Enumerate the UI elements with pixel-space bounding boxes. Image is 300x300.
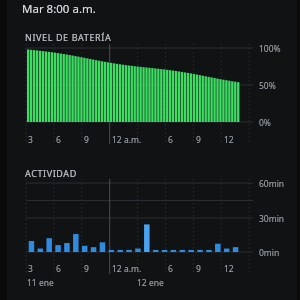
- staticText: 12 a.m.: [112, 263, 142, 275]
- staticText: 30min: [259, 213, 285, 225]
- button[interactable]: Mar 8:00 a.m.: [22, 1, 96, 17]
- button[interactable]: Gráfico de nivel de batería: [0, 0, 300, 300]
- button[interactable]: Gráfico de actividad: [0, 0, 300, 300]
- staticText: 3: [28, 134, 33, 146]
- staticText: 6: [56, 263, 61, 275]
- staticText: 100%: [259, 43, 281, 55]
- staticText: 12 a.m.: [112, 134, 142, 146]
- staticText: 50%: [259, 80, 276, 92]
- staticText: 12 ene: [137, 277, 164, 289]
- staticText: ACTIVIDAD: [25, 167, 77, 179]
- staticText: 9: [84, 263, 89, 275]
- staticText: 3: [28, 263, 33, 275]
- staticText: 12: [224, 263, 234, 275]
- staticText: NIVEL DE BATERÍA: [25, 31, 112, 43]
- staticText: 9: [196, 134, 201, 146]
- staticText: 6: [168, 134, 173, 146]
- staticText: 60min: [259, 178, 285, 190]
- staticText: 0%: [259, 117, 271, 129]
- staticText: 11 ene: [27, 277, 54, 289]
- staticText: 0min: [259, 247, 280, 259]
- staticText: 6: [56, 134, 61, 146]
- staticText: 9: [196, 263, 201, 275]
- staticText: 6: [168, 263, 173, 275]
- staticText: 9: [84, 134, 89, 146]
- staticText: 12: [224, 134, 234, 146]
